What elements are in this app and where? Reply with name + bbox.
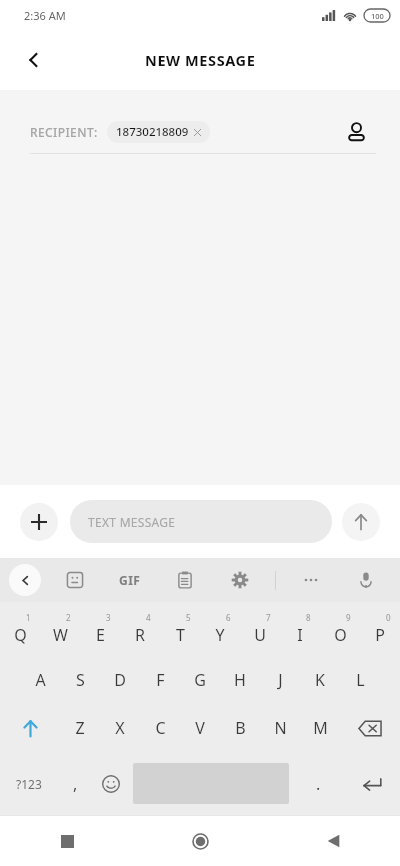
button[interactable]: F <box>140 656 180 704</box>
staticText: TEXT MESSAGE <box>88 514 176 530</box>
staticText: N <box>274 717 287 739</box>
staticText: F <box>156 669 165 691</box>
staticText: 8 <box>306 612 311 623</box>
button[interactable]: Voice input <box>346 560 386 600</box>
staticText: M <box>313 717 328 739</box>
button[interactable]: Home <box>134 816 267 866</box>
staticText: RECIPIENT: <box>30 124 98 140</box>
staticText: 2 <box>66 612 71 623</box>
staticText: T <box>176 624 185 646</box>
button[interactable]: J <box>260 656 300 704</box>
staticText: , <box>73 773 78 795</box>
staticText: S <box>76 669 85 691</box>
staticText: G <box>194 669 206 691</box>
button[interactable]: Shift <box>0 704 60 752</box>
button[interactable]: 8 <box>280 602 320 656</box>
staticText: GIF <box>119 572 141 588</box>
staticText: . <box>316 773 321 795</box>
staticText: 2:36 AM <box>24 8 66 23</box>
button[interactable]: G <box>180 656 220 704</box>
button[interactable]: Backspace <box>340 704 400 752</box>
staticText: B <box>235 717 246 739</box>
staticText: Y <box>215 624 225 646</box>
staticText: 9 <box>346 612 351 623</box>
staticText: 7 <box>266 612 271 623</box>
button[interactable]: Emoji <box>93 752 129 815</box>
button[interactable]: Settings <box>220 560 260 600</box>
staticText: R <box>135 624 145 646</box>
staticText: O <box>334 624 347 646</box>
button[interactable]: Back <box>267 816 400 866</box>
staticText: H <box>234 669 246 691</box>
staticText: 100 <box>371 11 384 21</box>
button[interactable]: N <box>260 704 300 752</box>
staticText: Z <box>75 717 85 739</box>
staticText: C <box>155 717 166 739</box>
button[interactable]: 5 <box>160 602 200 656</box>
button[interactable]: 6 <box>200 602 240 656</box>
button[interactable]: 0 <box>360 602 400 656</box>
button[interactable]: TEXT MESSAGE <box>70 500 332 543</box>
staticText: 6 <box>226 612 231 623</box>
button[interactable]: ?123 <box>0 752 57 815</box>
staticText: E <box>96 624 105 646</box>
button[interactable]: 9 <box>320 602 360 656</box>
button[interactable]: B <box>220 704 260 752</box>
staticText: 1 <box>26 612 31 623</box>
staticText: U <box>254 624 266 646</box>
staticText: 18730218809 <box>116 124 189 140</box>
staticText: ?123 <box>16 776 42 792</box>
button[interactable]: D <box>100 656 140 704</box>
button[interactable]: Send <box>342 503 380 541</box>
staticText: V <box>195 717 205 739</box>
button[interactable]: 1 <box>0 602 40 656</box>
button[interactable]: Close toolbar <box>9 564 41 596</box>
button[interactable]: K <box>300 656 340 704</box>
staticText: 5 <box>186 612 191 623</box>
button[interactable]: . <box>293 752 343 815</box>
button[interactable]: V <box>180 704 220 752</box>
button[interactable]: , <box>57 752 93 815</box>
staticText: K <box>315 669 325 691</box>
staticText: L <box>356 669 365 691</box>
button[interactable]: GIF <box>110 560 150 600</box>
button[interactable]: M <box>300 704 340 752</box>
staticText: Q <box>14 624 27 646</box>
button[interactable]: S <box>60 656 100 704</box>
button[interactable]: 4 <box>120 602 160 656</box>
staticText: 3 <box>106 612 111 623</box>
button[interactable]: More options <box>291 560 331 600</box>
button[interactable]: H <box>220 656 260 704</box>
button[interactable]: L <box>340 656 380 704</box>
button[interactable]: Stickers <box>55 560 95 600</box>
staticText: I <box>297 624 303 646</box>
button[interactable]: X <box>100 704 140 752</box>
button[interactable]: Z <box>60 704 100 752</box>
staticText: J <box>278 669 283 691</box>
staticText: D <box>114 669 126 691</box>
button[interactable]: Back <box>10 36 58 84</box>
button[interactable]: Enter <box>343 752 400 815</box>
button[interactable]: Choose contact <box>336 112 376 152</box>
button[interactable]: 7 <box>240 602 280 656</box>
button[interactable]: 2 <box>40 602 80 656</box>
button[interactable]: 18730218809 <box>107 121 210 143</box>
button[interactable]: Add attachment <box>20 503 58 541</box>
staticText: X <box>115 717 125 739</box>
button[interactable]: Recents <box>0 816 134 866</box>
button[interactable]: C <box>140 704 180 752</box>
staticText: W <box>53 624 68 646</box>
staticText: A <box>35 669 46 691</box>
button[interactable]: Clipboard <box>165 560 205 600</box>
button[interactable]: 3 <box>80 602 120 656</box>
staticText: 0 <box>386 612 391 623</box>
staticText: NEW MESSAGE <box>145 50 256 70</box>
staticText: 4 <box>146 612 151 623</box>
button[interactable]: A <box>20 656 60 704</box>
staticText: P <box>375 624 385 646</box>
